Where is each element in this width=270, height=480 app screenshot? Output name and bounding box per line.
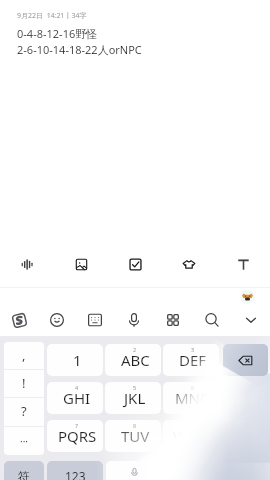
button[interactable]: Apps [153, 296, 192, 344]
staticText: ABC [121, 350, 150, 370]
staticText: 0-4-8-12-16野怪 [17, 26, 98, 41]
staticText: PQRS [58, 426, 97, 446]
button[interactable]: Voice input [128, 466, 140, 478]
button[interactable]: Checklist [108, 241, 162, 287]
staticText: TUV [121, 426, 150, 446]
button[interactable]: Assistant [240, 289, 255, 304]
staticText: 2-6-10-14-18-22人orNPC [17, 42, 142, 57]
staticText: 6 [191, 384, 195, 391]
staticText: , [22, 346, 26, 364]
button[interactable]: Style [162, 241, 216, 287]
button[interactable]: , [4, 342, 44, 369]
staticText: 3 [191, 346, 195, 353]
staticText: ? [21, 402, 27, 420]
staticText: WXYZ [173, 426, 213, 446]
staticText: 7 [75, 422, 79, 429]
staticText: 2 [133, 346, 137, 353]
button[interactable]: Space [106, 461, 216, 480]
button[interactable]: Hide keyboard [231, 296, 270, 344]
button[interactable]: 123 [47, 461, 103, 480]
button[interactable]: 1 [47, 344, 103, 376]
button[interactable]: ABC [105, 344, 161, 376]
staticText: 9月22日 14:21丨34字 [17, 11, 87, 21]
button[interactable]: Emoji [38, 296, 76, 344]
staticText: JKL [124, 388, 146, 408]
button[interactable]: ? [4, 398, 44, 426]
button[interactable]: Voice input [114, 296, 153, 344]
button[interactable]: Backspace [223, 344, 268, 376]
staticText: 8 [133, 422, 137, 429]
button[interactable]: JKL [105, 382, 161, 414]
staticText: 1 [73, 350, 82, 370]
button[interactable]: GHI [47, 382, 103, 414]
button[interactable]: Keyboard [76, 296, 114, 344]
button[interactable]: WXYZ [163, 420, 219, 452]
button[interactable]: MNO [163, 382, 219, 414]
staticText: ··· [20, 434, 29, 448]
button[interactable]: TUV [105, 420, 161, 452]
staticText: 5 [133, 384, 137, 391]
button[interactable]: Audio [0, 241, 54, 287]
button[interactable]: Search [192, 296, 231, 344]
staticText: MNO [175, 388, 212, 408]
staticText: DEF [179, 350, 207, 370]
button[interactable]: Text format [216, 241, 270, 287]
button[interactable]: Sogou input [0, 296, 38, 344]
button[interactable]: ··· [4, 427, 44, 455]
staticText: 4 [75, 384, 79, 391]
staticText: GHI [63, 388, 91, 408]
button[interactable]: PQRS [47, 420, 103, 452]
staticText: ! [22, 374, 26, 392]
staticText: 符 [18, 469, 30, 480]
button[interactable]: Image [54, 241, 108, 287]
button[interactable]: DEF [163, 344, 219, 376]
staticText: 123 [65, 468, 86, 480]
button[interactable]: 符 [4, 461, 44, 480]
button[interactable]: ! [4, 370, 44, 397]
